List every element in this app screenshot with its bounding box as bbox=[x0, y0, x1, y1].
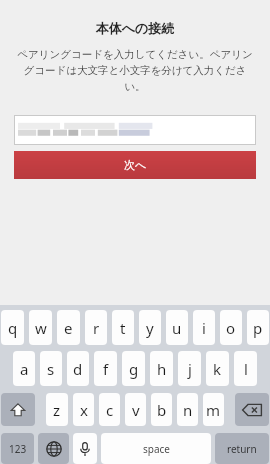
button[interactable]: d bbox=[67, 351, 89, 386]
button[interactable]: Shift bbox=[1, 393, 35, 426]
button[interactable]: l bbox=[234, 351, 257, 386]
button[interactable]: u bbox=[166, 310, 188, 345]
staticText: j bbox=[188, 359, 192, 379]
button[interactable]: i bbox=[193, 310, 215, 345]
staticText: z bbox=[53, 400, 61, 420]
staticText: c bbox=[106, 400, 114, 420]
button[interactable]: 123 bbox=[1, 433, 34, 464]
button[interactable]: y bbox=[139, 310, 161, 345]
staticText: p bbox=[253, 318, 263, 338]
button[interactable]: x bbox=[73, 393, 94, 426]
button[interactable]: c bbox=[99, 393, 120, 426]
staticText: a bbox=[20, 359, 29, 379]
staticText: i bbox=[202, 318, 206, 338]
staticText: l bbox=[244, 359, 248, 379]
button[interactable]: return bbox=[215, 433, 269, 464]
staticText: b bbox=[157, 400, 167, 420]
button[interactable]: Backspace bbox=[235, 393, 269, 426]
button[interactable]: q bbox=[1, 310, 24, 345]
button[interactable]: r bbox=[85, 310, 107, 345]
staticText: d bbox=[73, 359, 83, 379]
button[interactable]: v bbox=[125, 393, 146, 426]
staticText: n bbox=[183, 400, 193, 420]
staticText: 本体への接続 bbox=[0, 20, 270, 36]
staticText: 次へ bbox=[124, 158, 147, 172]
button[interactable]: h bbox=[150, 351, 173, 386]
button[interactable]: w bbox=[29, 310, 52, 345]
staticText: e bbox=[64, 318, 73, 338]
staticText: f bbox=[103, 359, 109, 379]
staticText: space bbox=[143, 442, 170, 456]
staticText: w bbox=[35, 318, 47, 338]
staticText: u bbox=[172, 318, 182, 338]
staticText: o bbox=[226, 318, 236, 338]
staticText: k bbox=[213, 359, 222, 379]
button[interactable]: z bbox=[46, 393, 68, 426]
staticText: q bbox=[8, 318, 18, 338]
button[interactable]: o bbox=[220, 310, 242, 345]
staticText: r bbox=[93, 318, 100, 338]
button[interactable]: e bbox=[57, 310, 80, 345]
staticText: h bbox=[157, 359, 167, 379]
staticText: g bbox=[129, 359, 139, 379]
button[interactable]: n bbox=[177, 393, 198, 426]
button[interactable]: Dictation bbox=[73, 433, 97, 464]
staticText: v bbox=[132, 400, 140, 420]
button[interactable]: p bbox=[247, 310, 269, 345]
button[interactable]: j bbox=[178, 351, 201, 386]
staticText: return bbox=[227, 442, 257, 456]
button[interactable]: t bbox=[112, 310, 134, 345]
button[interactable]: b bbox=[151, 393, 172, 426]
button[interactable]: m bbox=[203, 393, 224, 426]
staticText: s bbox=[47, 359, 55, 379]
staticText: x bbox=[80, 400, 88, 420]
button[interactable]: Change keyboard language bbox=[38, 433, 69, 464]
button[interactable] bbox=[14, 115, 256, 145]
staticText: 123 bbox=[9, 442, 27, 456]
staticText: ペアリングコードを入力してください。ペアリングコードは大文字と小文字を分けて入力… bbox=[16, 48, 254, 93]
button[interactable]: s bbox=[40, 351, 62, 386]
button[interactable]: k bbox=[206, 351, 229, 386]
button[interactable]: space bbox=[101, 433, 211, 464]
button[interactable]: f bbox=[94, 351, 117, 386]
button[interactable]: g bbox=[122, 351, 145, 386]
staticText: y bbox=[146, 318, 154, 338]
staticText: t bbox=[120, 318, 126, 338]
button[interactable]: 次へ bbox=[14, 151, 256, 179]
staticText: m bbox=[206, 400, 221, 420]
button[interactable]: a bbox=[13, 351, 35, 386]
